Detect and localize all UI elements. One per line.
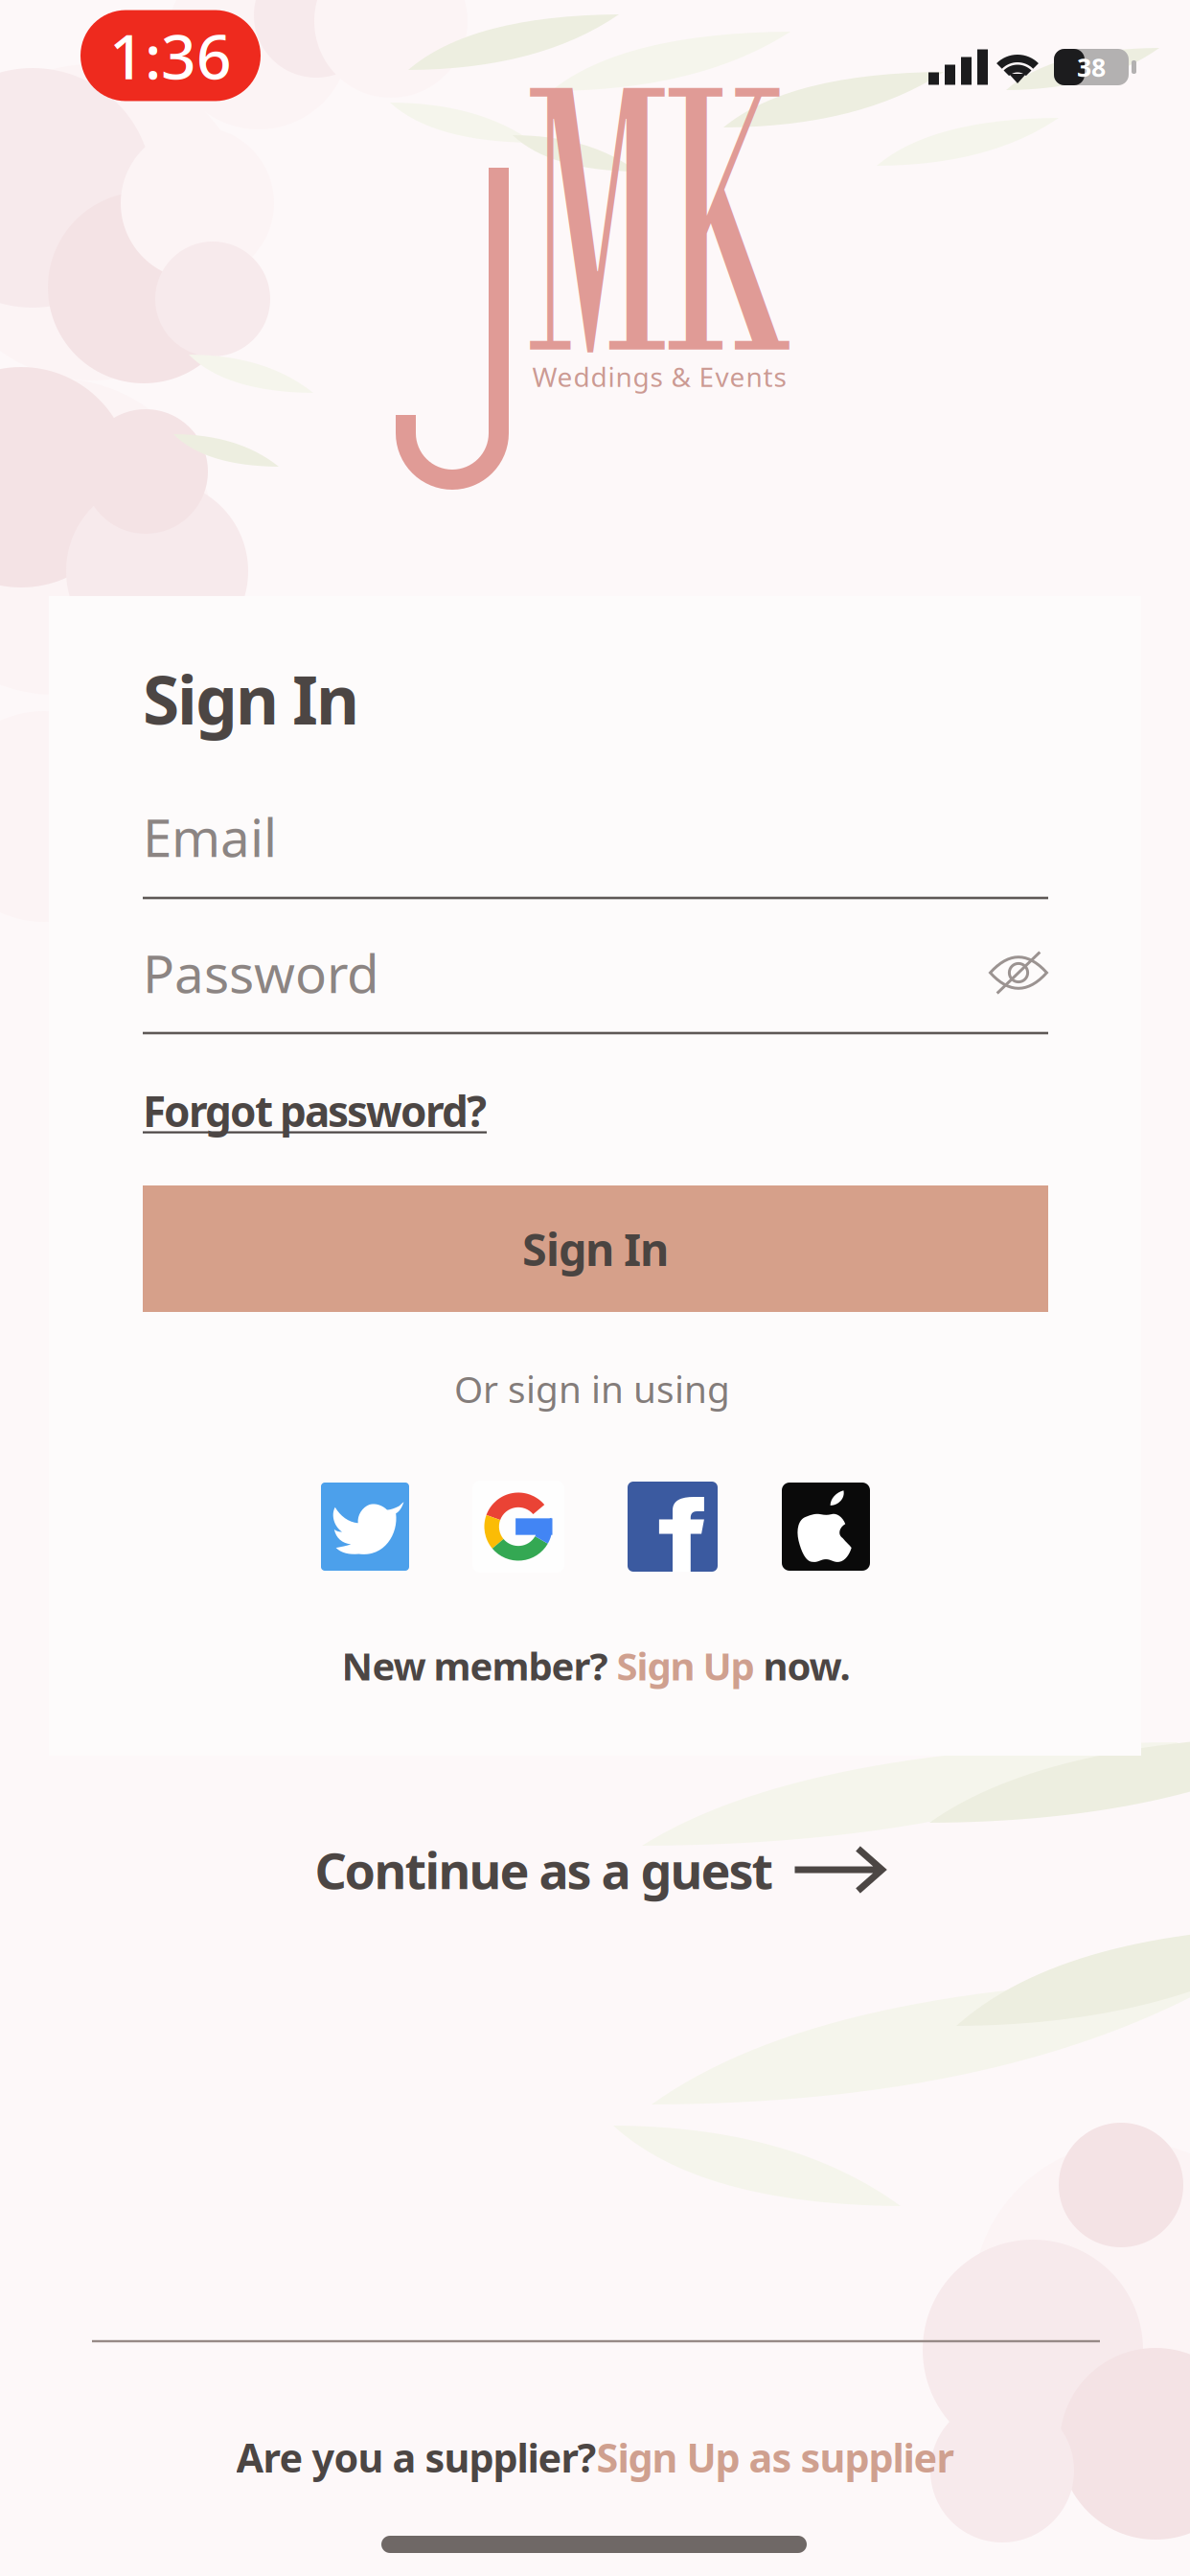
button[interactable]: Continue as a guest [299,1816,898,1924]
staticText: 1:36 [109,15,232,96]
button[interactable]: Sign in with Facebook [628,1482,718,1572]
staticText: now. [755,1640,850,1691]
staticText: Sign Up [617,1640,755,1691]
button[interactable]: Recording 1:36 [80,10,261,101]
button[interactable]: Sign in with Twitter [321,1483,409,1571]
button[interactable]: Show password [989,956,1048,989]
button[interactable]: Are you a supplier? [217,2414,973,2501]
staticText: Are you a supplier? [236,2431,596,2484]
staticText: Password [143,938,379,1007]
button[interactable]: Sign in with Apple [782,1483,870,1571]
button[interactable]: Sign in with Google [472,1481,564,1573]
staticText: Sign Up as supplier [596,2431,954,2484]
staticText: New member? [342,1640,617,1691]
button[interactable]: Forgot password? [143,1073,487,1148]
staticText: Continue as a guest [315,1837,774,1903]
staticText: 38 [1077,50,1106,84]
staticText: MK [370,26,938,467]
staticText: Sign In [522,1219,669,1278]
staticText: Email [143,802,277,871]
button[interactable]: New member? [322,1627,870,1704]
staticText: Weddings & Events [532,359,786,394]
button[interactable]: Sign In [143,1185,1048,1312]
staticText: Or sign in using [454,1364,730,1413]
staticText: Sign In [143,655,359,743]
staticText: Forgot password? [143,1083,487,1139]
